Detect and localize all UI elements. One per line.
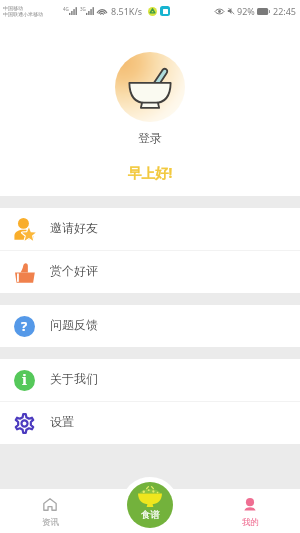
button[interactable]: 赏个好评 <box>0 251 300 293</box>
staticText: 早上好! <box>128 164 173 182</box>
staticText: 设置 <box>50 414 74 429</box>
staticText: 3G <box>80 6 86 12</box>
staticText: 赏个好评 <box>50 263 98 278</box>
button[interactable]: 食谱 <box>127 482 173 528</box>
button[interactable]: 资讯 <box>0 489 100 533</box>
button[interactable]: 设置 <box>0 402 300 444</box>
staticText: 邀请好友 <box>50 220 98 235</box>
staticText: ? <box>21 317 28 335</box>
staticText: 中国联通小米移动 <box>3 11 43 17</box>
button[interactable]: 我的 <box>200 489 300 533</box>
staticText: 8.51K/s <box>111 5 143 17</box>
button[interactable]: ? <box>0 305 300 347</box>
staticText: 22:45 <box>273 5 297 17</box>
staticText: 92% <box>237 5 255 17</box>
button[interactable]: i <box>0 359 300 401</box>
staticText: 中国移动 <box>3 5 23 11</box>
staticText: 4G <box>63 6 69 12</box>
button[interactable] <box>115 52 185 122</box>
staticText: 问题反馈 <box>50 317 98 332</box>
staticText: 我的 <box>242 517 259 528</box>
button[interactable]: 邀请好友 <box>0 208 300 250</box>
staticText: 登录 <box>138 130 162 145</box>
staticText: 关于我们 <box>50 371 98 386</box>
staticText: 食谱 <box>141 509 160 521</box>
staticText: 资讯 <box>42 517 59 528</box>
staticText: i <box>22 370 27 389</box>
